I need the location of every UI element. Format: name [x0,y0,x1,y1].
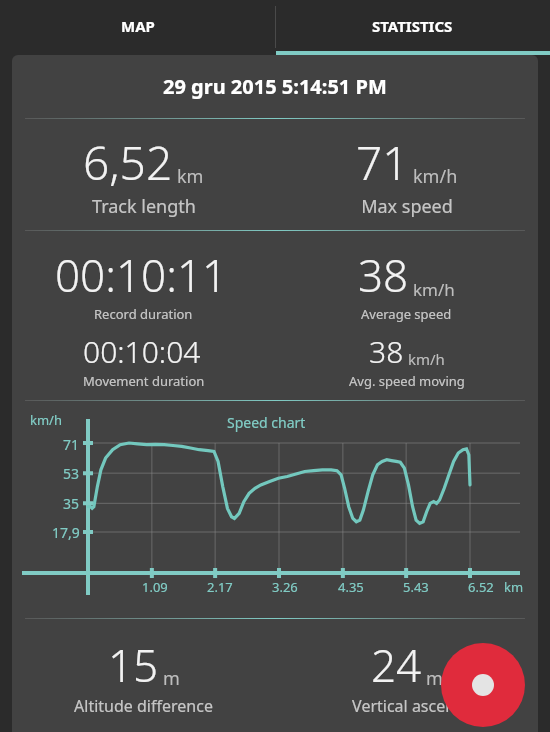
staticText: 17,9 [52,523,80,542]
staticText: km/h [413,278,455,301]
staticText: 24 [371,635,422,695]
button[interactable]: Record [441,643,525,727]
staticText: m [163,666,180,691]
staticText: Movement duration [83,372,205,390]
staticText: STATISTICS [372,16,453,36]
staticText: km/h [408,349,445,369]
staticText: 6.52 [468,578,494,596]
staticText: km/h [413,164,458,189]
staticText: MAP [121,16,155,36]
staticText: km/h [30,411,62,429]
staticText: 38 [369,331,404,372]
staticText: 3.26 [272,578,298,596]
staticText: 29 gru 2015 5:14:51 PM [163,73,387,100]
staticText: 2.17 [207,578,233,596]
staticText: 71 [63,435,80,454]
staticText: Speed chart [227,413,306,432]
staticText: m [426,666,443,691]
staticText: Average speed [361,305,452,323]
staticText: Record duration [94,305,193,323]
button[interactable]: MAP [0,0,275,51]
staticText: Vertical ascent [352,695,461,717]
staticText: 5.43 [403,578,429,596]
staticText: Altitude difference [74,695,213,717]
staticText: 1.09 [142,578,168,596]
staticText: 00:10:04 [83,331,201,372]
staticText: Max speed [361,194,453,219]
staticText: 6,52 [83,131,173,194]
staticText: 38 [358,245,409,305]
staticText: 35 [63,494,80,513]
staticText: km [504,578,524,596]
staticText: 53 [63,464,80,483]
staticText: Track length [92,194,196,219]
staticText: 15 [108,635,159,695]
button[interactable]: STATISTICS [275,0,550,51]
staticText: 4.35 [338,578,364,596]
staticText: 71 [356,131,409,194]
staticText: 00:10:11 [55,245,228,305]
staticText: km [177,164,204,189]
staticText: Avg. speed moving [349,372,465,390]
